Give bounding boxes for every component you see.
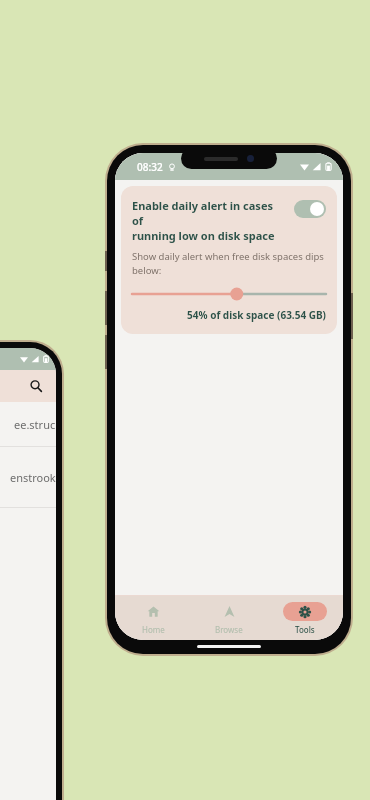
staticText: enstrook	[10, 470, 56, 485]
staticText: ee.struc	[14, 417, 56, 432]
staticText: Browse	[215, 624, 243, 635]
staticText: 54% of disk space (63.54 GB)	[132, 308, 326, 322]
staticText: Enable daily alert in cases of running l…	[132, 198, 286, 243]
button[interactable]: Browse	[191, 596, 267, 640]
button[interactable]: Toggle daily alert	[294, 200, 326, 218]
button[interactable]: Disk space threshold slider	[132, 286, 326, 302]
button[interactable]: Enable daily alert in cases of running l…	[121, 186, 337, 334]
staticText: 08:32	[137, 160, 163, 174]
button[interactable]: Home	[115, 596, 191, 640]
staticText: Tools	[295, 624, 315, 635]
button[interactable]: Tools	[267, 596, 343, 640]
staticText: Show daily alert when free disk spaces d…	[132, 250, 324, 277]
button[interactable]: Search	[26, 376, 46, 396]
staticText: Home	[142, 624, 165, 635]
